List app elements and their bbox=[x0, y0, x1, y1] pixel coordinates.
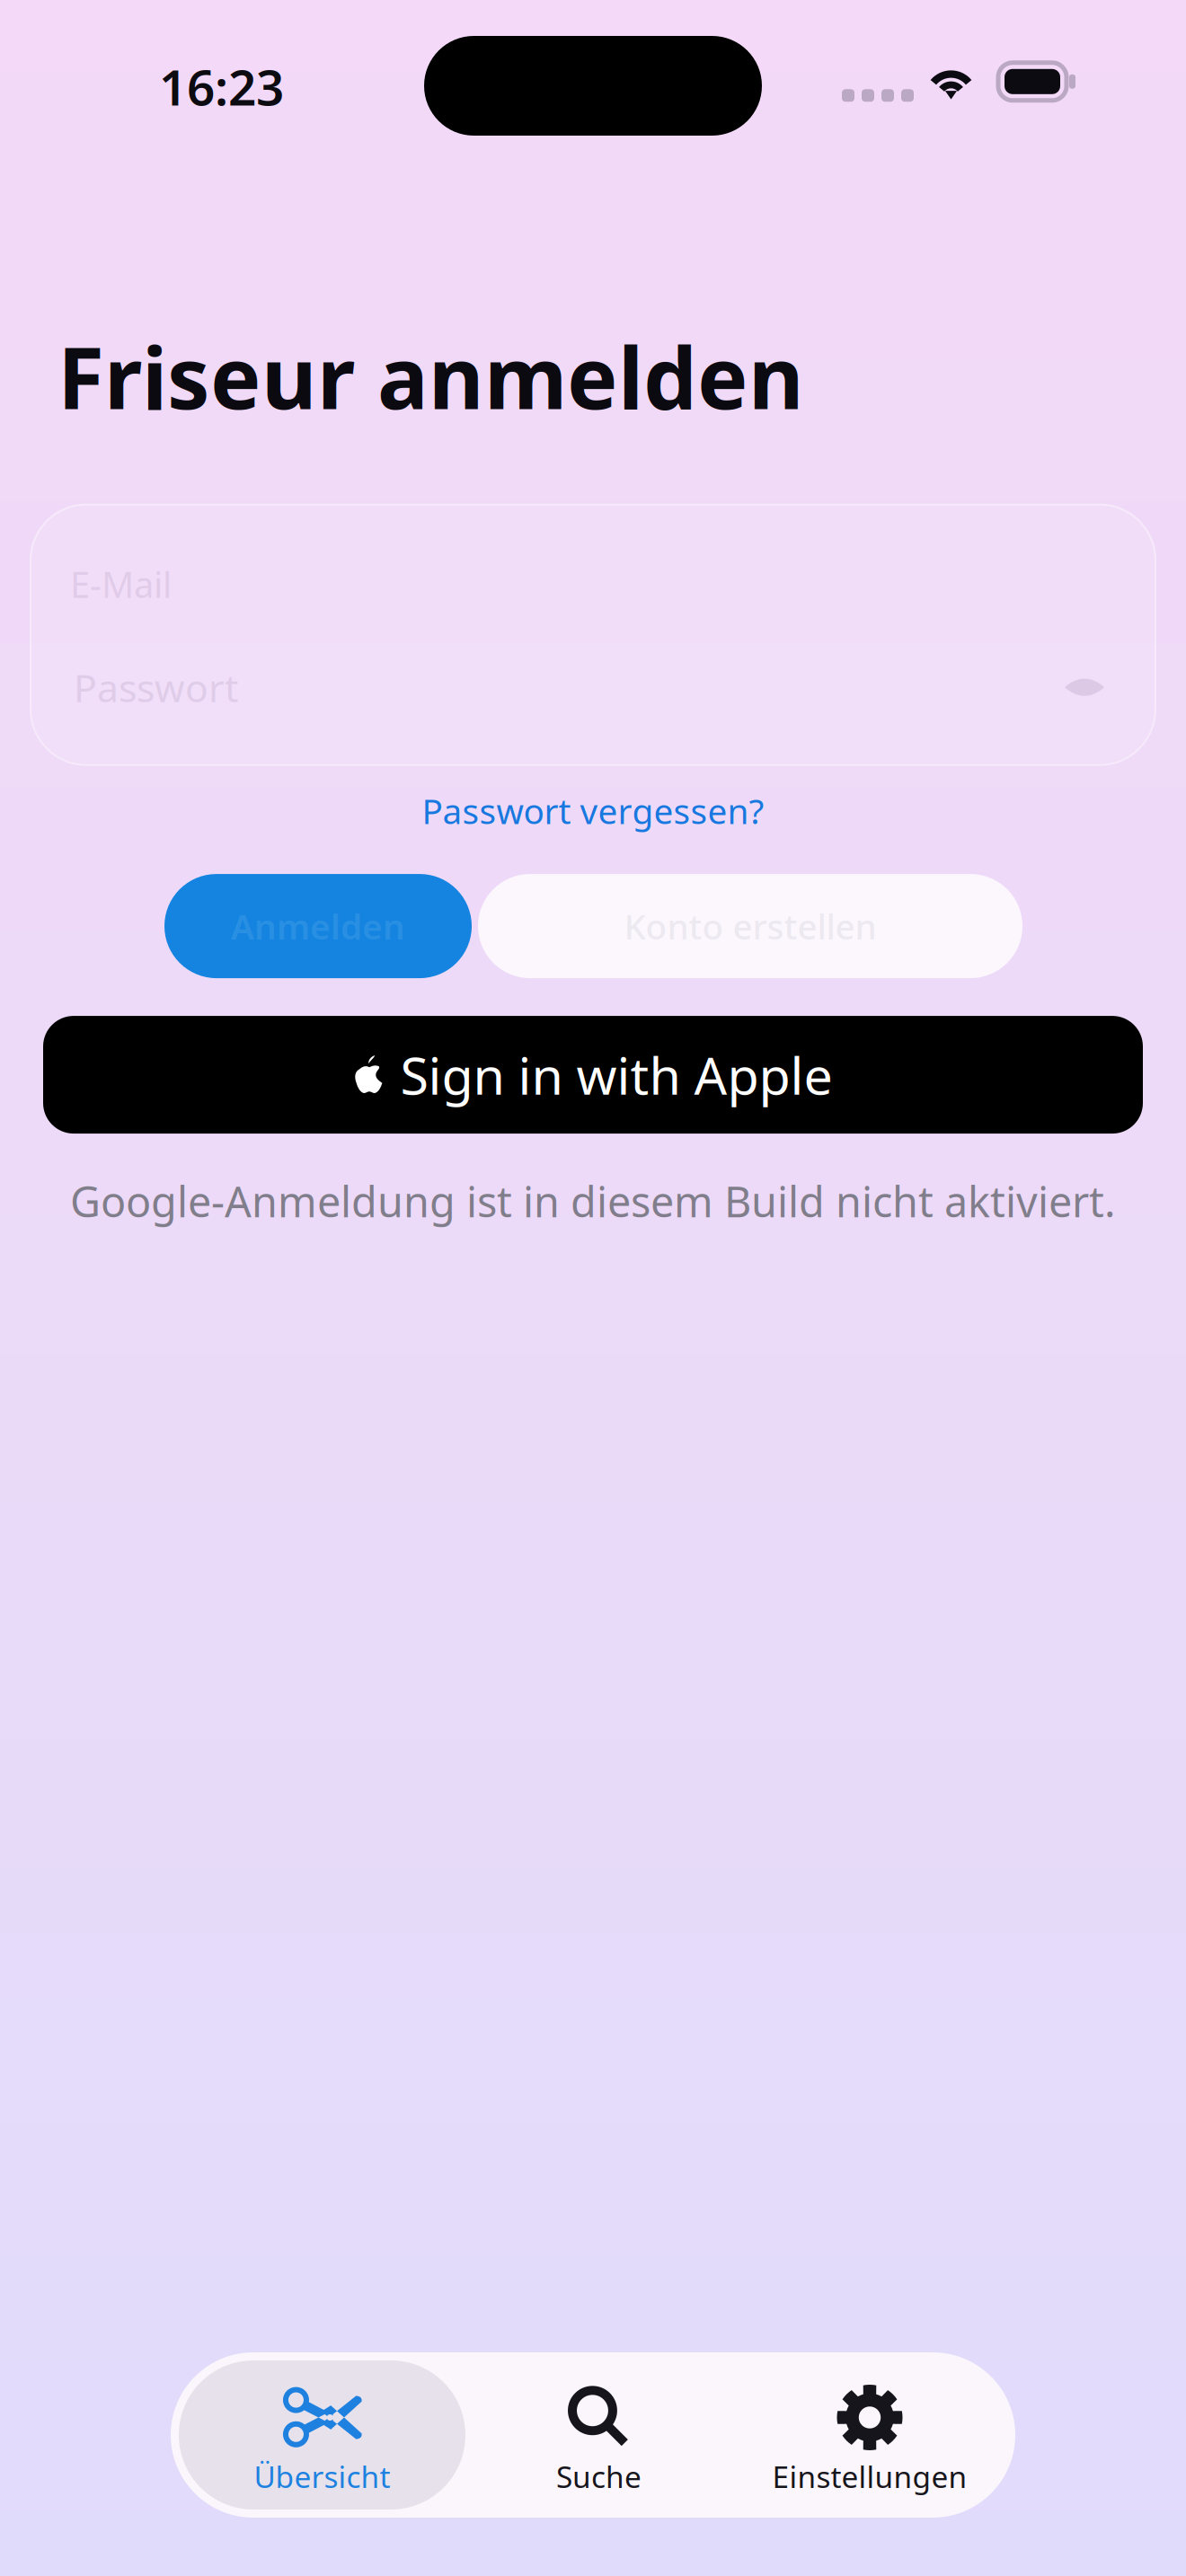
staticText: Übersicht bbox=[254, 2457, 390, 2496]
staticText: Konto erstellen bbox=[624, 903, 876, 949]
staticText: Anmelden bbox=[231, 903, 405, 949]
button[interactable]: Übersicht bbox=[179, 2360, 465, 2510]
staticText: Google-Anmeldung ist in diesem Build nic… bbox=[70, 1173, 1116, 1229]
staticText: Einstellungen bbox=[772, 2457, 967, 2496]
staticText: Suche bbox=[556, 2457, 642, 2496]
staticText: Passwort vergessen? bbox=[422, 787, 764, 834]
button[interactable]: Einstellungen bbox=[732, 2360, 1007, 2510]
button[interactable]: Passwort vergessen? bbox=[0, 765, 1186, 874]
staticText: Friseur anmelden bbox=[58, 320, 804, 433]
staticText: Sign in with Apple bbox=[400, 1041, 832, 1109]
button[interactable]: Sign in with Apple bbox=[43, 1016, 1143, 1134]
button[interactable]: Suche bbox=[465, 2360, 732, 2510]
staticText: 16:23 bbox=[159, 54, 284, 119]
button[interactable]: Anmelden bbox=[164, 874, 472, 978]
staticText: Passwort bbox=[74, 662, 238, 713]
button[interactable]: Konto erstellen bbox=[478, 874, 1022, 978]
staticText: E-Mail bbox=[70, 560, 172, 608]
